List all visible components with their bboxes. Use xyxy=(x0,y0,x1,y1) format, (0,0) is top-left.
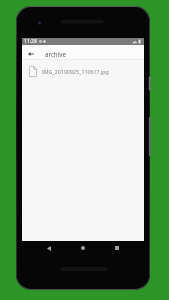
button[interactable]: Back xyxy=(22,48,40,59)
staticText: 11:28 xyxy=(24,38,37,45)
button[interactable]: Home xyxy=(76,241,90,255)
staticText: IMG_20190925_110617.jpg xyxy=(42,68,109,75)
button[interactable]: Back xyxy=(22,241,76,255)
button[interactable]: IMG_20190925_110617.jpg xyxy=(22,60,144,82)
staticText: archive xyxy=(45,50,66,58)
button[interactable]: Recent apps xyxy=(90,241,143,255)
